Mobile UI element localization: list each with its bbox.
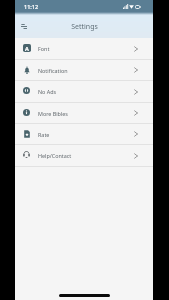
button[interactable]: Rate [15, 124, 153, 145]
button[interactable]: Menu [16, 19, 31, 34]
staticText: A [25, 45, 29, 52]
staticText: Settings [71, 22, 98, 32]
button[interactable]: Help/Contact [15, 145, 153, 167]
button[interactable]: More Bibles [15, 103, 153, 124]
staticText: 11:12 [24, 3, 39, 10]
staticText: Notification [38, 67, 68, 74]
staticText: Font [38, 45, 50, 52]
button[interactable]: A [15, 38, 153, 60]
button[interactable]: No Ads [15, 81, 153, 103]
staticText: Help/Contact [38, 152, 72, 159]
staticText: No Ads [38, 88, 57, 95]
staticText: More Bibles [38, 110, 68, 117]
staticText: Rate [38, 131, 50, 138]
button[interactable]: Notification [15, 60, 153, 81]
